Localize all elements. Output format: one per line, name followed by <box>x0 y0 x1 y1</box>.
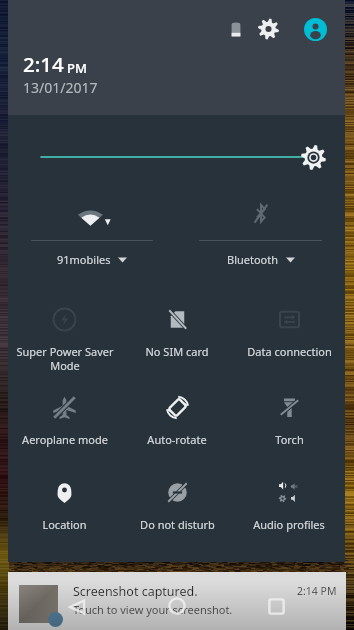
button[interactable]: Home <box>162 591 192 621</box>
staticText: PM <box>67 59 87 77</box>
staticText: Super Power Saver Mode <box>16 344 114 373</box>
button[interactable]: Settings <box>253 14 283 44</box>
staticText: Bluetooth <box>227 252 279 267</box>
staticText: 91mobiles <box>57 252 111 267</box>
button[interactable]: Bluetooth <box>176 189 345 290</box>
button[interactable]: Do not disturb <box>121 463 233 548</box>
staticText: No SIM card <box>145 344 209 359</box>
button[interactable]: Audio profiles <box>233 463 345 548</box>
staticText: Aeroplane mode <box>22 432 108 447</box>
button[interactable]: 91mobiles <box>8 189 176 290</box>
staticText: Torch <box>275 432 304 447</box>
button[interactable]: Super Power Saver Mode <box>8 290 121 378</box>
staticText: Auto-rotate <box>147 432 207 447</box>
button[interactable]: Aeroplane mode <box>8 378 121 463</box>
button[interactable]: User account <box>300 14 330 44</box>
staticText: Do not disturb <box>140 517 215 532</box>
button[interactable]: No SIM card <box>121 290 233 378</box>
button[interactable]: Torch <box>233 378 345 463</box>
button[interactable]: Recent apps <box>261 591 291 621</box>
staticText: 2:14 <box>23 50 64 78</box>
button[interactable]: Brightness <box>8 115 345 189</box>
staticText: Audio profiles <box>253 517 325 532</box>
button[interactable]: Screenshot captured. <box>8 572 346 630</box>
staticText: 2:14 PM <box>297 584 337 598</box>
staticText: Data connection <box>247 344 332 359</box>
button[interactable]: Battery <box>223 16 249 42</box>
staticText: 13/01/2017 <box>23 78 98 97</box>
button[interactable]: Back <box>62 592 92 622</box>
button[interactable]: Data connection <box>233 290 345 378</box>
button[interactable]: Auto-rotate <box>121 378 233 463</box>
button[interactable]: Location <box>8 463 121 548</box>
staticText: Location <box>42 517 87 532</box>
staticText: Screenshot captured. <box>73 583 198 600</box>
staticText: Touch to view your screenshot. <box>73 602 233 617</box>
